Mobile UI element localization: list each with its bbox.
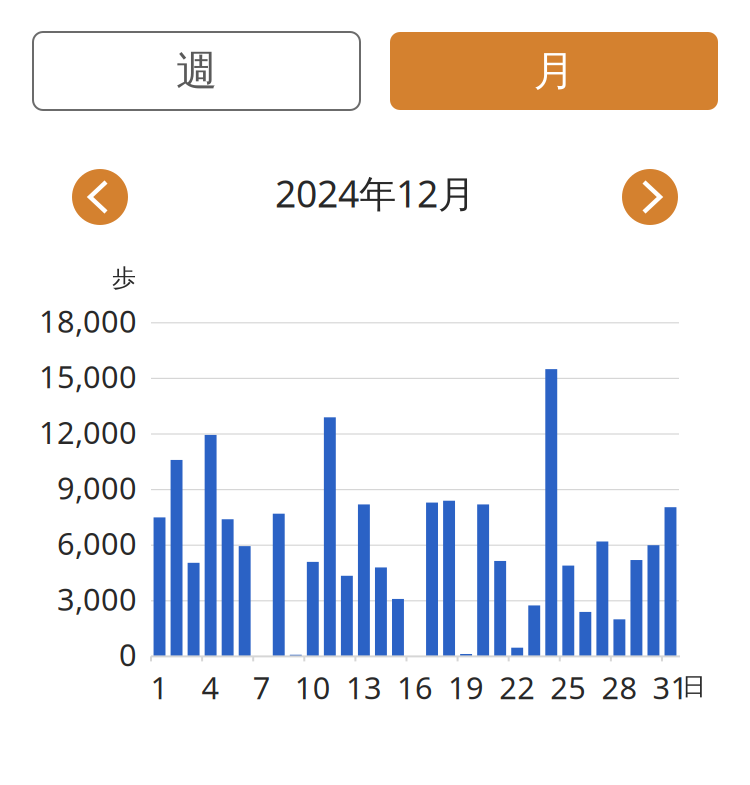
- staticText: 28: [601, 667, 637, 708]
- staticText: 16: [397, 667, 433, 708]
- staticText: 13: [346, 667, 382, 708]
- staticText: 2024年12月: [275, 168, 475, 218]
- button[interactable]: 月: [390, 32, 718, 110]
- button[interactable]: 前の月: [72, 169, 128, 225]
- staticText: 19: [448, 667, 484, 708]
- staticText: 週: [176, 46, 217, 96]
- staticText: 4: [202, 667, 220, 708]
- staticText: 日: [682, 672, 706, 701]
- staticText: 12,000: [39, 412, 137, 452]
- staticText: 6,000: [57, 523, 137, 563]
- staticText: 10: [295, 667, 331, 708]
- staticText: 22: [499, 667, 535, 708]
- staticText: 25: [550, 667, 586, 708]
- staticText: 1: [150, 667, 168, 708]
- staticText: 月: [533, 46, 574, 96]
- staticText: 0: [119, 634, 137, 675]
- staticText: 歩: [112, 263, 136, 293]
- staticText: 15,000: [39, 356, 137, 397]
- staticText: 9,000: [57, 467, 137, 508]
- button[interactable]: 週: [33, 32, 360, 110]
- staticText: 3,000: [57, 578, 137, 619]
- staticText: 7: [253, 667, 271, 708]
- staticText: 31: [652, 667, 688, 708]
- staticText: 18,000: [39, 300, 137, 341]
- button[interactable]: 次の月: [622, 169, 678, 225]
